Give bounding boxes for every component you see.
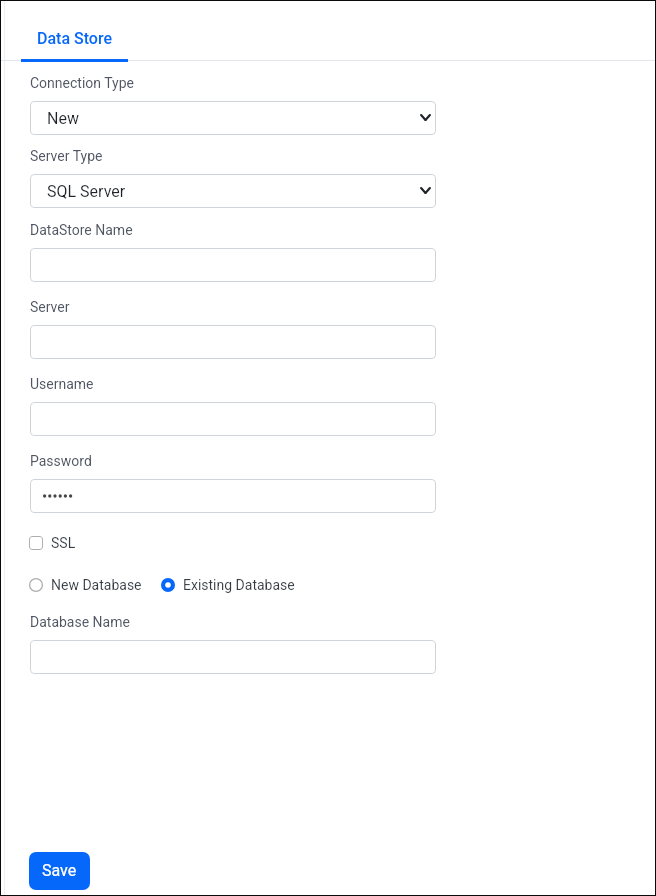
staticText: Username <box>30 376 94 392</box>
staticText: Connection Type <box>30 75 134 91</box>
button[interactable] <box>30 402 436 436</box>
staticText: Server Type <box>30 148 103 164</box>
other: Open Connection Type list <box>420 114 431 121</box>
button[interactable]: SSL <box>29 535 76 551</box>
button[interactable] <box>30 248 436 282</box>
staticText: Data Store <box>37 29 112 48</box>
staticText: New Database <box>51 577 142 593</box>
staticText: Existing Database <box>183 577 295 593</box>
staticText: DataStore Name <box>30 222 133 238</box>
staticText: SSL <box>51 535 76 551</box>
button[interactable]: Existing Database <box>161 577 295 593</box>
button[interactable] <box>30 640 436 674</box>
staticText: SQL Server <box>47 182 126 201</box>
button[interactable]: New <box>30 101 436 135</box>
other: Open Server Type list <box>420 187 431 194</box>
staticText: Database Name <box>30 614 130 630</box>
button[interactable]: New Database <box>29 577 142 593</box>
staticText: Password <box>30 453 92 469</box>
button[interactable] <box>30 325 436 359</box>
staticText: Server <box>30 299 70 315</box>
button[interactable]: Data Store <box>21 29 128 62</box>
button[interactable]: Save <box>29 852 90 890</box>
button[interactable]: SQL Server <box>30 174 436 208</box>
staticText: Save <box>42 861 77 880</box>
staticText: New <box>47 109 79 128</box>
button[interactable] <box>30 479 436 513</box>
